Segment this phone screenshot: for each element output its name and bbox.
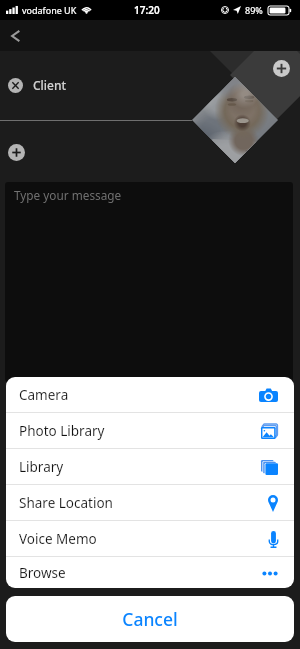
staticText: Cancel bbox=[122, 607, 178, 631]
button[interactable]: Add recipient bbox=[8, 144, 25, 161]
button[interactable]: Camera bbox=[6, 377, 294, 412]
staticText: 17:20 bbox=[134, 3, 160, 17]
staticText: Library bbox=[19, 458, 64, 476]
button[interactable]: Voice Memo bbox=[6, 521, 294, 556]
button[interactable]: Add bbox=[273, 60, 290, 77]
staticText: Share Location bbox=[19, 494, 113, 512]
button[interactable]: Type your message bbox=[5, 182, 293, 382]
staticText: vodafone UK bbox=[22, 4, 77, 16]
button[interactable]: Photo Library bbox=[6, 413, 294, 448]
staticText: Voice Memo bbox=[19, 530, 97, 548]
button[interactable]: Back bbox=[0, 20, 33, 51]
staticText: Camera bbox=[19, 386, 69, 404]
staticText: Client bbox=[33, 77, 67, 93]
staticText: Browse bbox=[19, 564, 66, 582]
staticText: Type your message bbox=[14, 187, 122, 203]
button[interactable]: Browse bbox=[6, 557, 294, 588]
button[interactable]: Cancel bbox=[6, 596, 294, 642]
button[interactable]: Library bbox=[6, 449, 294, 484]
button[interactable]: Share Location bbox=[6, 485, 294, 520]
staticText: 89% bbox=[245, 4, 263, 16]
staticText: Photo Library bbox=[19, 422, 105, 440]
